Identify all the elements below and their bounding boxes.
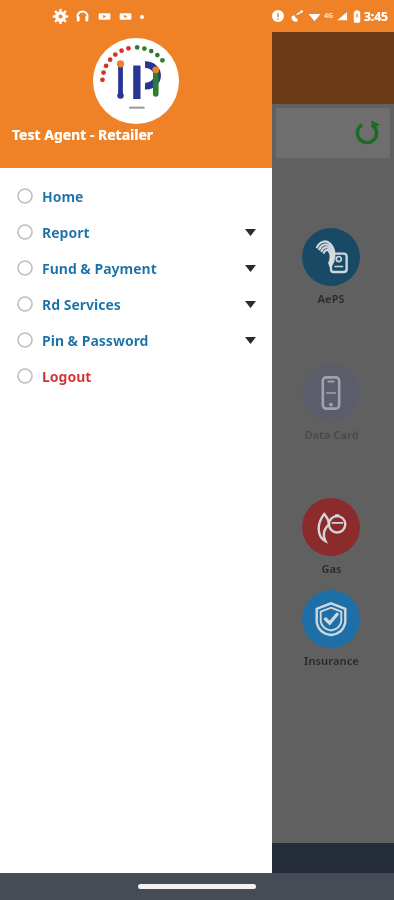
button[interactable]: Pin & Password — [0, 322, 272, 358]
staticText: Gas — [321, 561, 342, 576]
staticText: 3:45 — [364, 8, 388, 24]
staticText: Test Agent - Retailer — [12, 125, 154, 144]
button[interactable]: Refresh — [276, 108, 390, 158]
staticText: Rd Services — [42, 295, 121, 314]
staticText: Data Card — [304, 427, 359, 442]
button[interactable]: Insurance — [300, 590, 362, 668]
button[interactable]: AePS — [300, 228, 362, 306]
staticText: App Version : 1.50 — [89, 877, 183, 892]
staticText: Report — [42, 223, 90, 242]
staticText: Pin & Password — [42, 331, 149, 350]
button[interactable]: Fund & Payment — [0, 250, 272, 286]
staticText: AePS — [317, 291, 345, 306]
button[interactable]: Rd Services — [0, 286, 272, 322]
staticText: 4G — [324, 11, 334, 21]
button[interactable]: Data Card — [300, 364, 362, 442]
staticText: Insurance — [304, 653, 359, 668]
button[interactable]: Home — [0, 178, 272, 214]
button[interactable]: Gas — [300, 498, 362, 576]
staticText: Home — [42, 187, 84, 206]
staticText: Logout — [42, 367, 92, 386]
button[interactable]: Report — [0, 214, 272, 250]
staticText: Fund & Payment — [42, 259, 157, 278]
button[interactable]: Logout — [0, 358, 272, 394]
